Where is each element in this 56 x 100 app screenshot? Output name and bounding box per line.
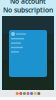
staticText: No account	[10, 0, 46, 5]
staticText: No subscription	[3, 5, 53, 14]
